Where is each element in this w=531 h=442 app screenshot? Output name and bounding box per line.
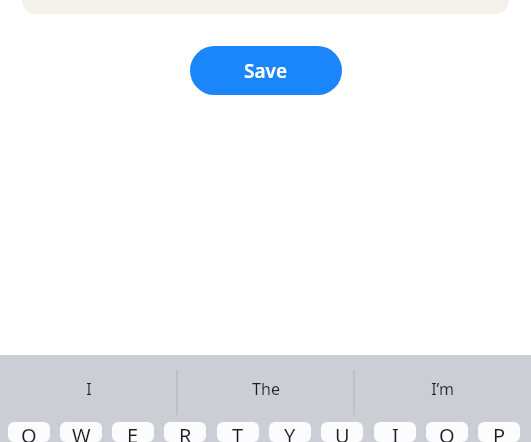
staticText: W [72,422,91,442]
button[interactable]: U [321,422,363,442]
staticText: O [439,422,455,442]
button[interactable]: T [217,422,259,442]
staticText: P [493,422,506,442]
button[interactable]: I [374,422,416,442]
staticText: R [179,422,192,442]
staticText: I [86,378,92,400]
staticText: I [392,422,399,442]
staticText: Save [244,58,288,84]
staticText: Q [21,422,37,442]
button[interactable]: Save [190,46,342,95]
button[interactable]: Q [8,422,50,442]
button[interactable]: I [0,355,177,422]
button[interactable]: O [426,422,468,442]
staticText: Y [284,422,296,442]
staticText: U [335,422,350,442]
button[interactable]: The [177,355,354,422]
staticText: The [252,378,280,400]
button[interactable]: I’m [354,355,531,422]
button[interactable]: W [60,422,102,442]
button[interactable]: Y [269,422,311,442]
staticText: I’m [431,378,454,400]
staticText: E [127,422,139,442]
button[interactable]: R [164,422,206,442]
staticText: T [232,422,244,442]
button[interactable]: E [112,422,154,442]
button[interactable]: P [478,422,520,442]
